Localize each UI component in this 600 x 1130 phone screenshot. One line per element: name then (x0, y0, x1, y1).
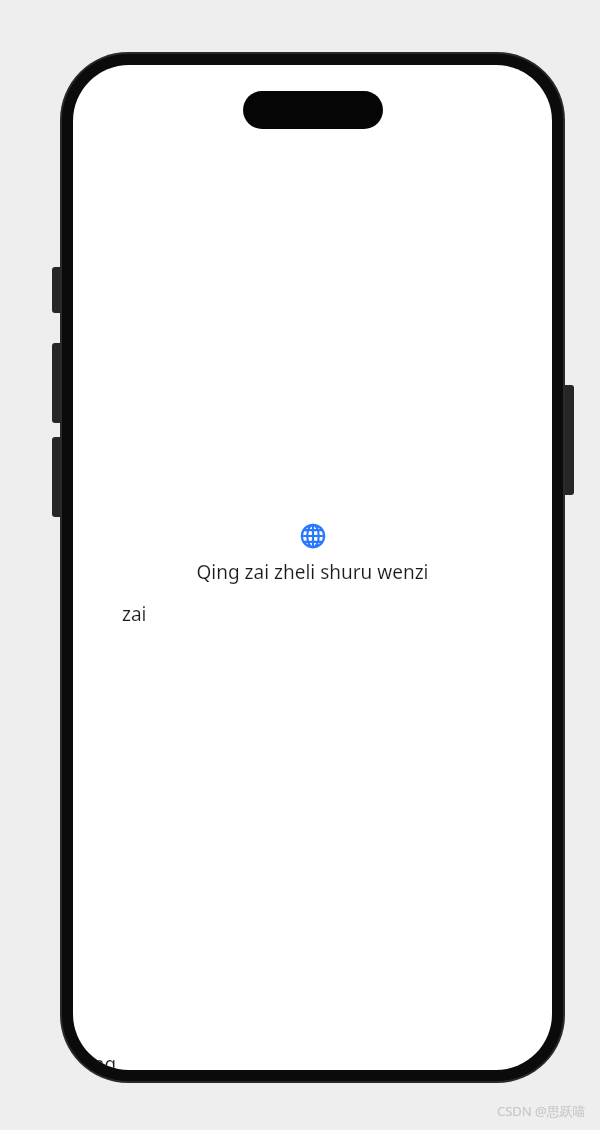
other: Silent switch (52, 267, 64, 313)
button[interactable]: Language (298, 521, 328, 551)
other: Volume down (52, 437, 64, 517)
other: Power (562, 385, 574, 495)
staticText: Qing (73, 1051, 122, 1070)
staticText: Qing zai zheli shuru wenzi (196, 559, 429, 585)
other: Volume up (52, 343, 64, 423)
staticText: zai (122, 601, 147, 627)
staticText: CSDN @思跃喵 (497, 1102, 586, 1120)
